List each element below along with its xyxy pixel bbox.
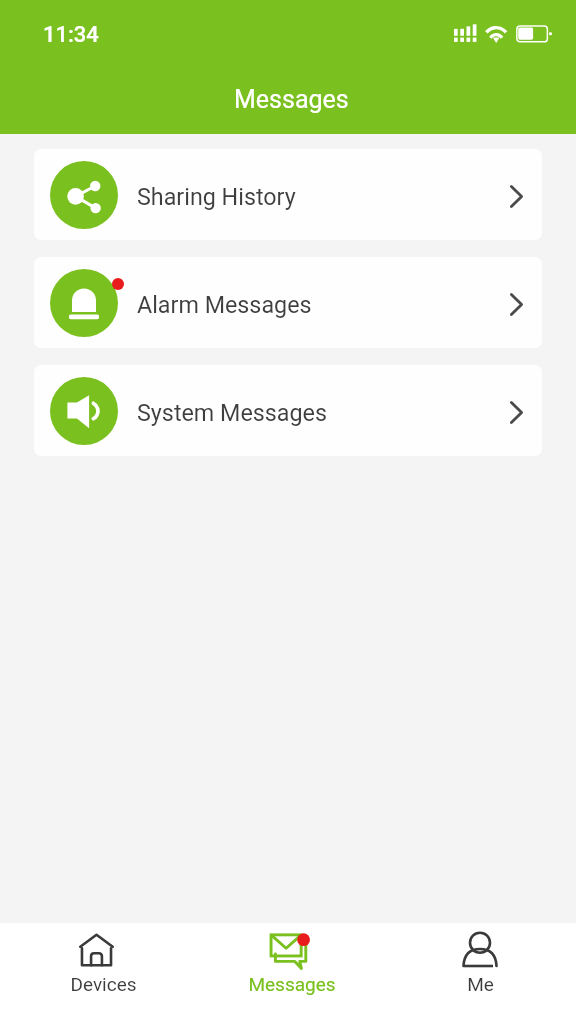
staticText: 11:34	[43, 22, 99, 48]
staticText: Messages	[234, 85, 349, 114]
button[interactable]: System Messages	[34, 365, 542, 456]
button[interactable]: Alarm Messages	[34, 257, 542, 348]
button[interactable]: Sharing History	[34, 149, 542, 240]
staticText: Me	[467, 973, 494, 995]
button[interactable]: Devices	[43, 923, 163, 1024]
staticText: Devices	[70, 973, 137, 995]
button[interactable]: Me	[420, 923, 540, 1024]
staticText: Sharing History	[137, 183, 296, 210]
staticText: Messages	[248, 973, 336, 995]
staticText: System Messages	[137, 399, 327, 426]
staticText: Alarm Messages	[137, 291, 312, 318]
button[interactable]: Messages	[232, 923, 352, 1024]
